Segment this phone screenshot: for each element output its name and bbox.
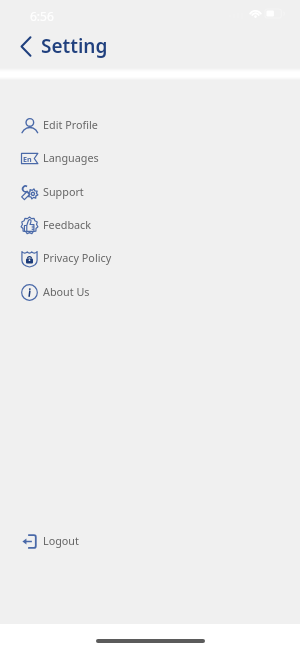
button[interactable]: About Us: [0, 275, 300, 308]
staticText: About Us: [43, 284, 90, 299]
staticText: 6:56: [30, 8, 54, 24]
staticText: Support: [43, 184, 84, 199]
button[interactable]: Edit Profile: [0, 108, 300, 141]
button[interactable]: Support: [0, 175, 300, 208]
button[interactable]: Privacy Policy: [0, 241, 300, 274]
staticText: Privacy Policy: [43, 250, 112, 265]
button[interactable]: Logout: [0, 524, 300, 557]
button[interactable]: En: [0, 141, 300, 174]
staticText: Setting: [41, 33, 108, 59]
staticText: Feedback: [43, 217, 92, 232]
button[interactable]: Back: [13, 33, 39, 59]
staticText: Logout: [43, 533, 79, 548]
staticText: Edit Profile: [43, 117, 98, 132]
staticText: Languages: [43, 150, 99, 165]
staticText: En: [23, 154, 32, 164]
button[interactable]: Feedback: [0, 208, 300, 241]
